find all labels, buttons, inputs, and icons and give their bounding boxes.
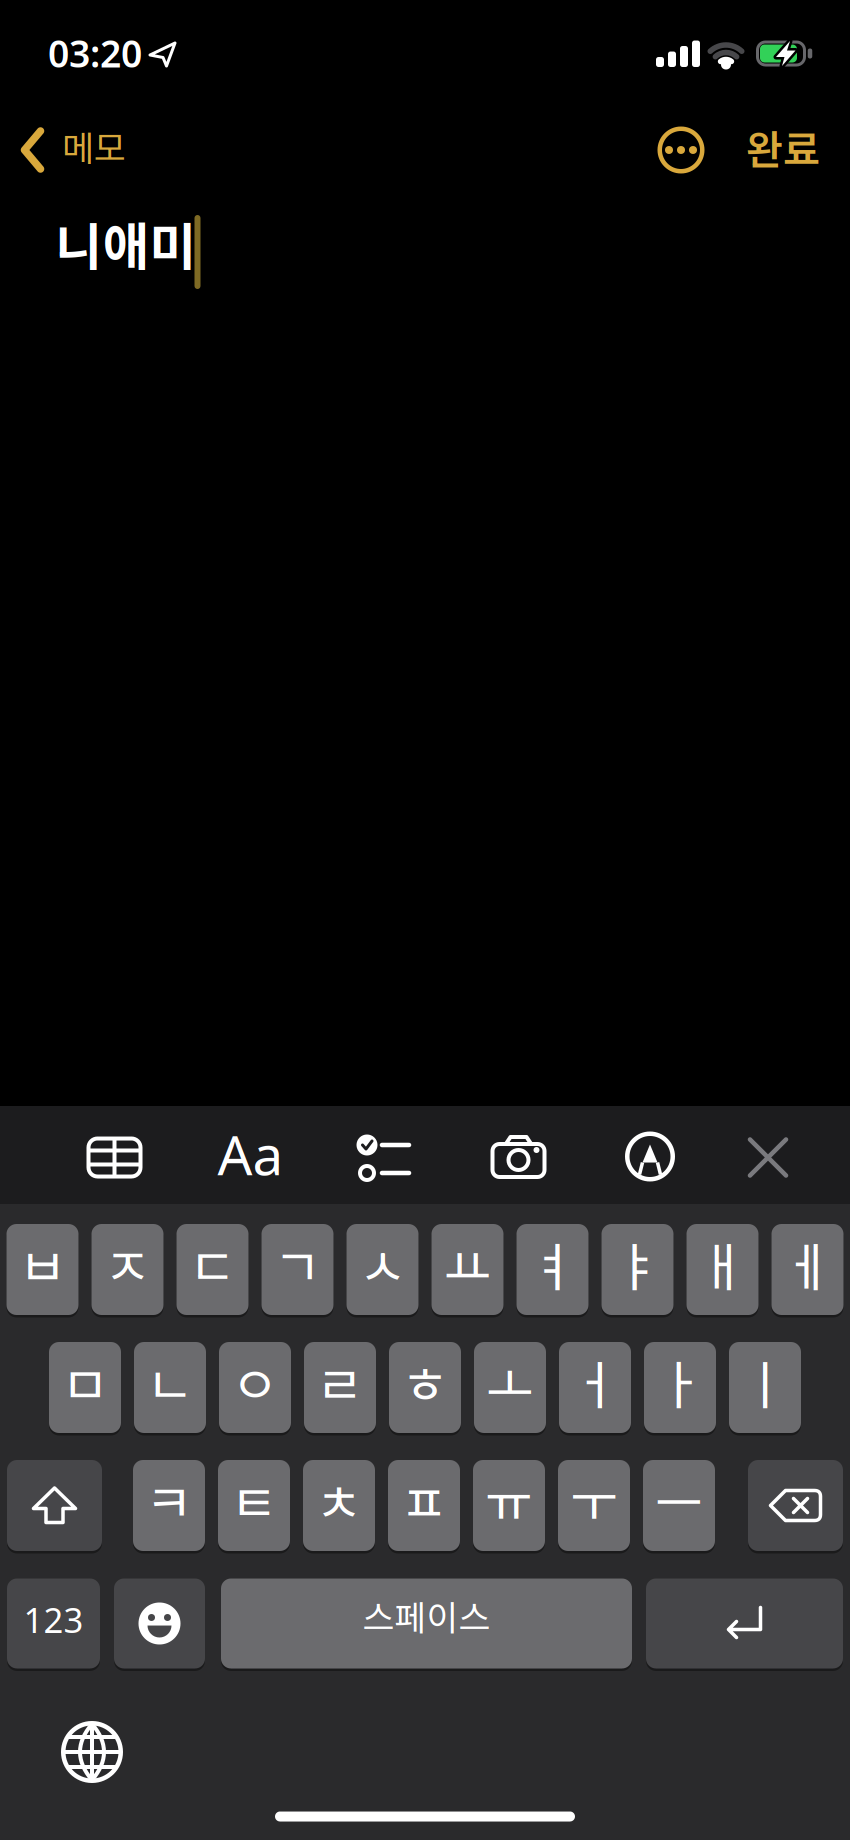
staticText: ㅠ [485,1462,533,1537]
staticText: ㅑ [613,1226,661,1301]
staticText: ㅛ [443,1226,491,1301]
button[interactable]: ㅠ [473,1460,545,1551]
button[interactable]: ㅕ [516,1224,588,1315]
staticText: ㅣ [741,1344,789,1419]
button[interactable]: ㄷ [176,1224,248,1315]
staticText: 니애미 [55,206,196,280]
staticText: ㅏ [656,1344,704,1419]
button[interactable]: ㅑ [601,1224,673,1315]
button[interactable]: Return [646,1578,843,1668]
staticText: ㅐ [698,1226,746,1301]
button[interactable]: ㅡ [643,1460,715,1551]
button[interactable]: Emoji [114,1578,205,1668]
button[interactable]: ㅁ [49,1342,121,1433]
staticText: ㅗ [486,1344,534,1419]
button[interactable]: 123 [7,1578,100,1668]
button[interactable]: ㅈ [91,1224,163,1315]
staticText: ㅔ [783,1226,831,1301]
button[interactable]: ㅣ [729,1342,801,1433]
staticText: ㄱ [273,1226,321,1301]
button[interactable]: ㄱ [261,1224,333,1315]
button[interactable]: Next keyboard [61,1721,123,1783]
button[interactable]: Insert table [86,1136,142,1178]
button[interactable]: Markup [625,1131,675,1181]
staticText: ㅁ [61,1344,109,1419]
staticText: ㄹ [316,1344,364,1419]
button[interactable]: Insert photo [490,1135,546,1179]
button[interactable]: ㅊ [303,1460,375,1551]
staticText: ㅜ [570,1462,618,1537]
button[interactable]: ㅋ [133,1460,205,1551]
button[interactable]: ㅇ [219,1342,291,1433]
button[interactable]: ㅓ [559,1342,631,1433]
button[interactable]: Delete [748,1460,843,1551]
button[interactable]: 스페이스 [221,1578,632,1668]
staticText: 메모 [62,121,126,171]
button[interactable]: ㅗ [474,1342,546,1433]
button[interactable]: ㅎ [389,1342,461,1433]
staticText: ㅊ [315,1462,363,1537]
staticText: ㅓ [571,1344,619,1419]
button[interactable]: ㅅ [346,1224,418,1315]
staticText: ㅌ [230,1462,278,1537]
staticText: ㅡ [655,1462,703,1537]
button[interactable]: ㅔ [771,1224,843,1315]
button[interactable]: Shift [7,1460,102,1551]
staticText: ㅅ [358,1226,406,1301]
button[interactable]: ㅛ [431,1224,503,1315]
button[interactable]: ㅌ [218,1460,290,1551]
staticText: ㅇ [231,1344,279,1419]
button[interactable]: ㅐ [686,1224,758,1315]
button[interactable]: More [655,124,707,176]
staticText: ㅋ [145,1462,193,1537]
button[interactable]: ㄴ [134,1342,206,1433]
staticText: ㅂ [18,1226,66,1301]
staticText: Aa [217,1118,283,1190]
button[interactable]: Dismiss [746,1135,790,1179]
button[interactable]: Format [200,1122,300,1186]
button[interactable]: ㅏ [644,1342,716,1433]
staticText: ㅎ [401,1344,449,1419]
staticText: 스페이스 [362,1590,490,1641]
staticText: 123 [23,1596,83,1642]
staticText: ㅈ [103,1226,151,1301]
staticText: 03:20 [48,28,142,78]
button[interactable]: ㅂ [6,1224,78,1315]
button[interactable]: ㄹ [304,1342,376,1433]
staticText: ㅕ [528,1226,576,1301]
button[interactable]: Checklist [355,1134,411,1180]
staticText: 완료 [746,118,820,176]
button[interactable]: 메모 [18,124,148,176]
staticText: ㄴ [146,1344,194,1419]
button[interactable]: ㅜ [558,1460,630,1551]
button[interactable]: 완료 [723,121,843,173]
staticText: ㅍ [400,1462,448,1537]
staticText: ㄷ [188,1226,236,1301]
button[interactable]: ㅍ [388,1460,460,1551]
